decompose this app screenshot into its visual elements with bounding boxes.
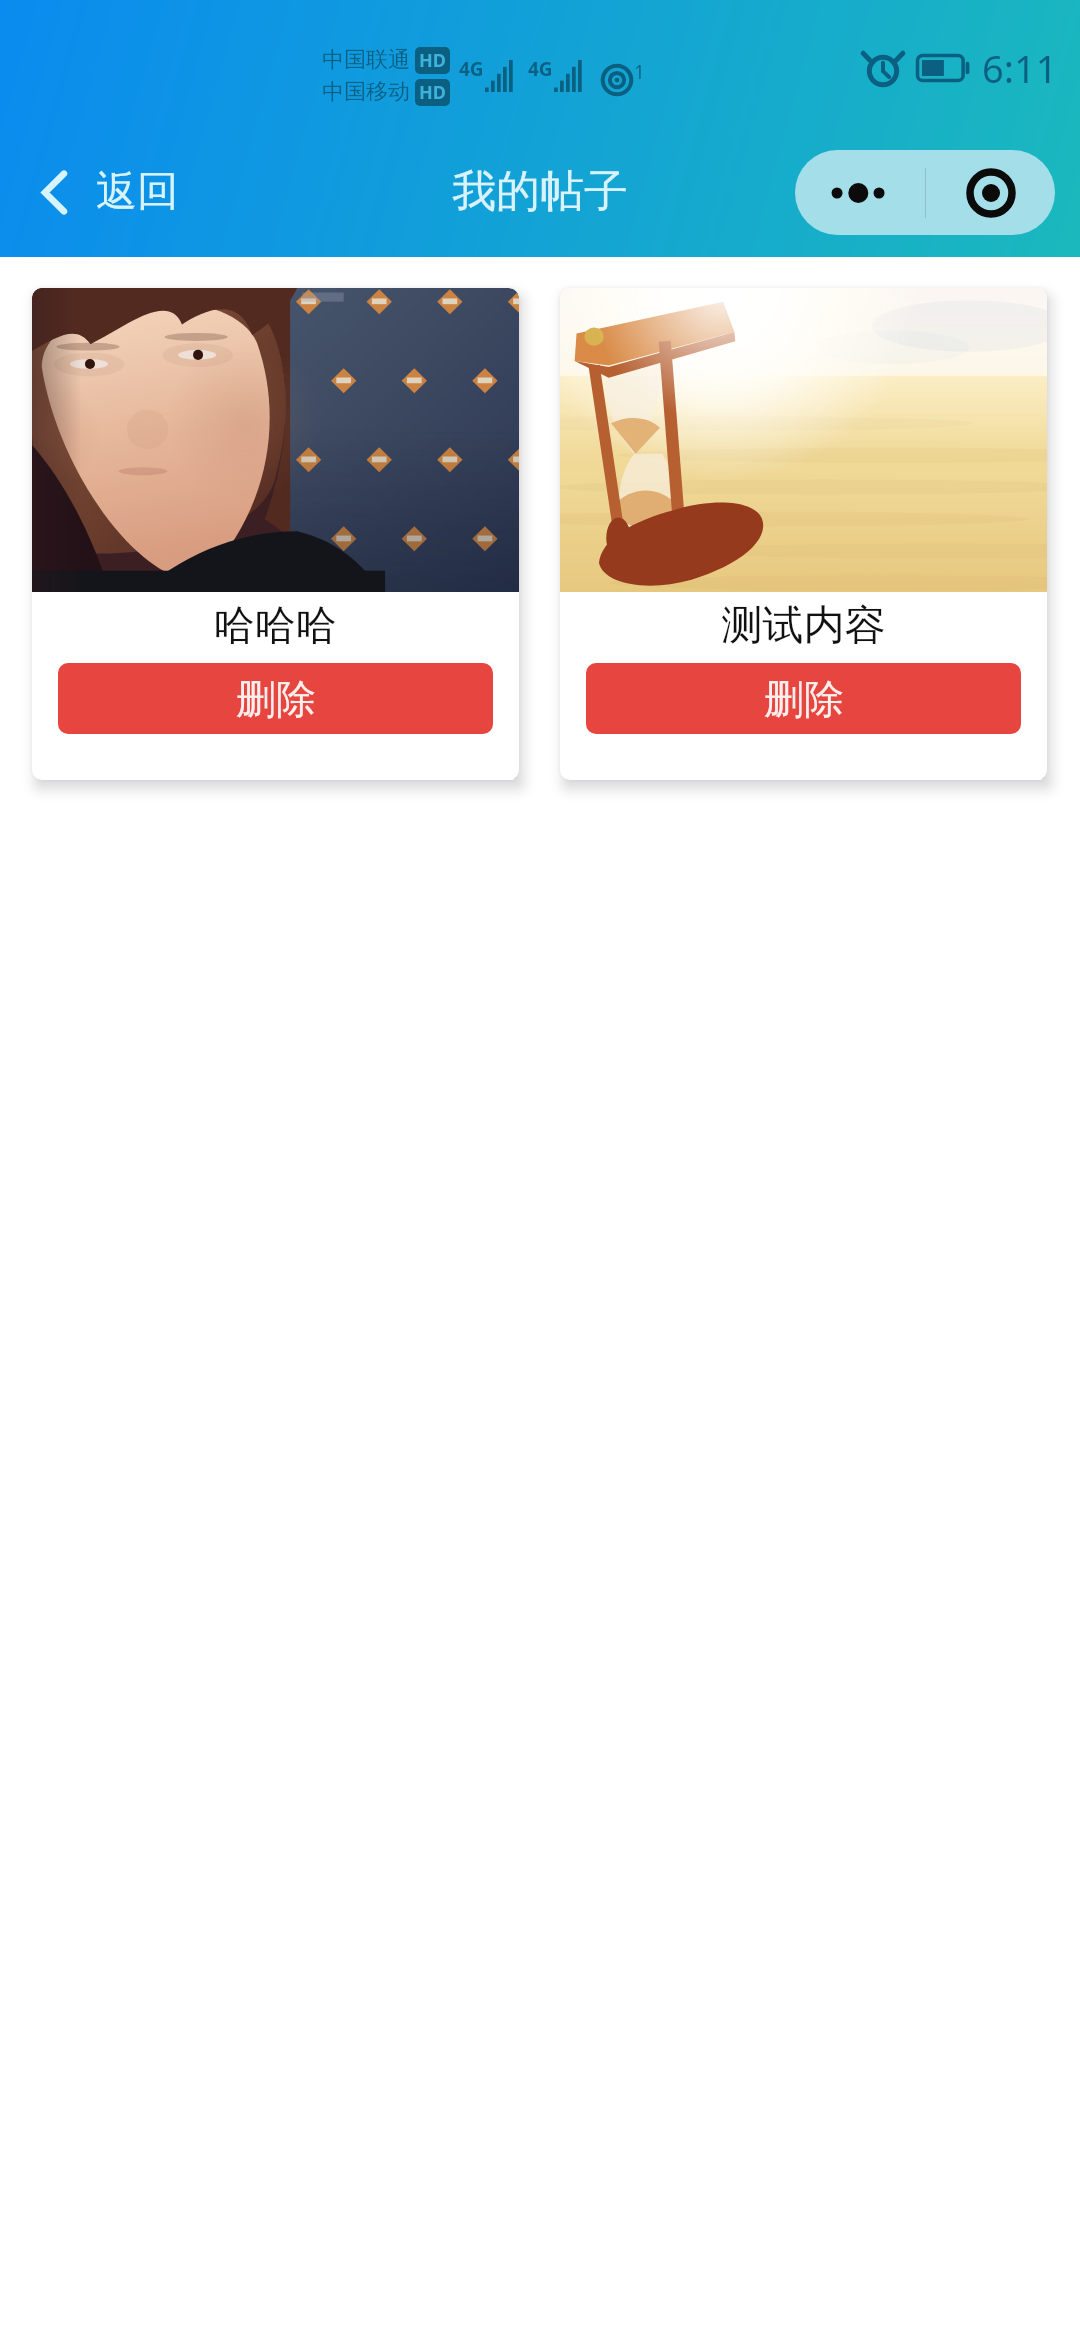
staticText: 测试内容 xyxy=(560,600,1047,652)
button[interactable]: 哈哈哈 xyxy=(32,288,519,780)
button[interactable]: 删除 xyxy=(586,663,1021,734)
staticText: 删除 xyxy=(764,674,844,724)
staticText: 返回 xyxy=(96,166,178,218)
button[interactable]: 返回 xyxy=(20,152,200,232)
button[interactable]: Close xyxy=(926,150,1055,235)
button[interactable]: 删除 xyxy=(58,663,493,734)
staticText: 哈哈哈 xyxy=(32,600,519,652)
staticText: 4G xyxy=(528,56,553,82)
staticText: 中国联通 xyxy=(322,46,410,74)
staticText: 中国移动 xyxy=(322,78,410,106)
button[interactable]: More xyxy=(795,150,925,235)
staticText: 1 xyxy=(634,59,645,85)
staticText: 6:11 xyxy=(982,42,1058,94)
staticText: HD xyxy=(419,80,446,105)
staticText: 我的帖子 xyxy=(452,164,628,219)
staticText: 删除 xyxy=(236,674,316,724)
button[interactable]: 测试内容 xyxy=(560,288,1047,780)
staticText: HD xyxy=(419,48,446,73)
staticText: 4G xyxy=(459,56,484,82)
